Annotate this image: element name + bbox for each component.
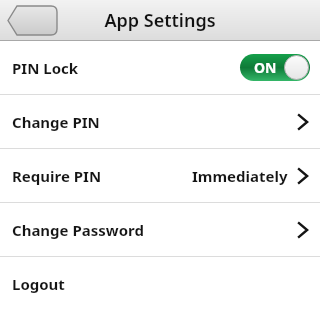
button[interactable]: PIN Lock toggle, on <box>240 54 310 81</box>
staticText: Change Password <box>12 220 144 240</box>
button[interactable]: Require PIN <box>0 149 320 202</box>
button[interactable]: Back <box>8 5 58 36</box>
button[interactable]: Change Password <box>0 203 320 256</box>
staticText: App Settings <box>104 8 216 33</box>
button[interactable]: Logout <box>0 257 320 310</box>
staticText: Logout <box>12 274 65 294</box>
staticText: Require PIN <box>12 166 102 186</box>
staticText: Change PIN <box>12 112 100 132</box>
button[interactable]: Change PIN <box>0 95 320 148</box>
button[interactable]: PIN Lock <box>0 41 320 94</box>
staticText: ON <box>254 58 277 77</box>
staticText: Immediately <box>192 166 288 186</box>
staticText: PIN Lock <box>12 58 79 78</box>
